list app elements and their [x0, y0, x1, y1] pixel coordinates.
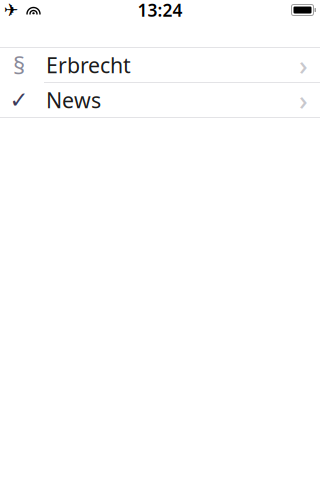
staticText: ›	[299, 47, 308, 83]
staticText: ✓	[9, 87, 28, 113]
staticText: News	[46, 86, 101, 114]
staticText: §	[13, 49, 25, 81]
staticText: Erbrecht	[46, 51, 131, 79]
button[interactable]: ✓	[0, 83, 320, 118]
staticText: 13:24	[137, 0, 182, 21]
staticText: ›	[299, 82, 308, 118]
staticText: ✈	[4, 0, 19, 20]
button[interactable]: §	[0, 48, 320, 83]
